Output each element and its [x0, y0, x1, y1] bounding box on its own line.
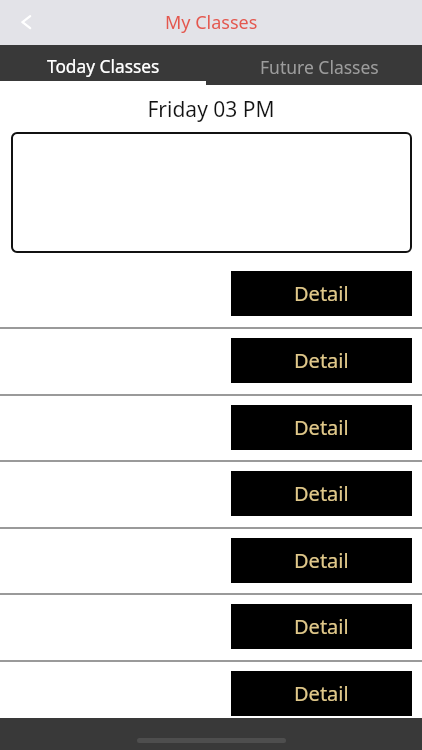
staticText: Today Classes [47, 55, 160, 79]
staticText: Detail [294, 414, 349, 441]
staticText: Detail [294, 680, 349, 707]
button[interactable]: Detail [231, 671, 412, 716]
staticText: Friday 03 PM [0, 95, 422, 124]
button[interactable]: Detail [231, 604, 412, 649]
button[interactable] [11, 132, 412, 253]
button[interactable]: Detail [231, 338, 412, 383]
staticText: Future Classes [260, 55, 379, 79]
button[interactable]: Back [0, 0, 48, 45]
button[interactable]: Detail [231, 538, 412, 583]
staticText: Detail [294, 480, 349, 507]
button[interactable]: Detail [231, 271, 412, 316]
button[interactable]: Detail [231, 405, 412, 450]
button[interactable]: Detail [231, 471, 412, 516]
staticText: Detail [294, 347, 349, 374]
staticText: Detail [294, 547, 349, 574]
staticText: Detail [294, 280, 349, 307]
button[interactable]: Today Classes [0, 45, 206, 85]
staticText: Detail [294, 613, 349, 640]
staticText: My Classes [165, 10, 258, 35]
button[interactable]: Future Classes [216, 45, 422, 85]
